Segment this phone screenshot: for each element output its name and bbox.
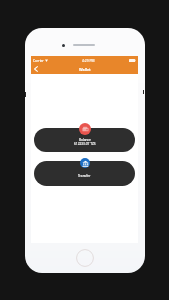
staticText: 612233.07 TZS: [74, 142, 96, 146]
button[interactable]: Balance: [34, 128, 135, 152]
staticText: Balance: [79, 138, 91, 142]
staticText: Transfer: [78, 174, 91, 178]
button[interactable]: Transfer: [34, 161, 135, 186]
staticText: Carrier: [33, 58, 44, 62]
staticText: Wallet: [79, 67, 91, 72]
button[interactable]: Back: [31, 64, 41, 74]
staticText: 4:29 PM: [82, 58, 95, 62]
